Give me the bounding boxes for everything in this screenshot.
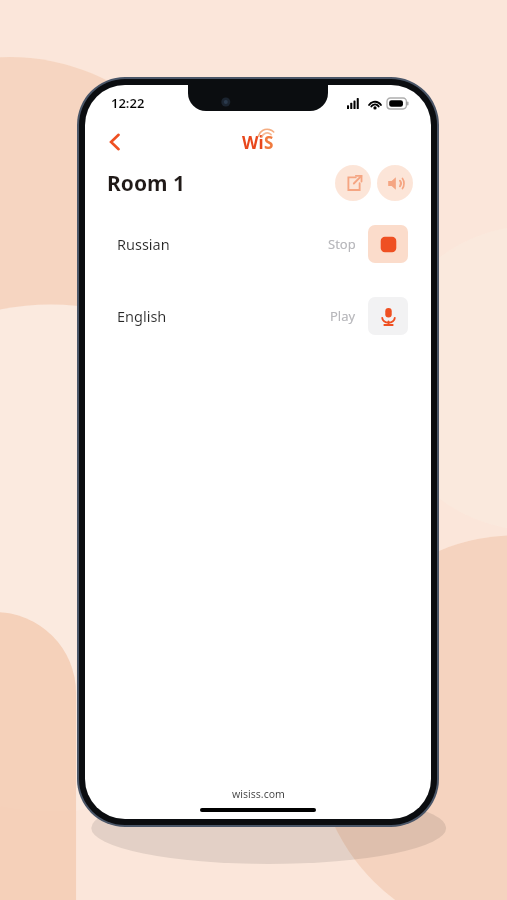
staticText: Play xyxy=(330,307,356,325)
button[interactable]: Back xyxy=(95,122,135,162)
staticText: Room 1 xyxy=(107,169,185,198)
staticText: 12:22 xyxy=(111,94,145,112)
staticText: Stop xyxy=(328,235,356,253)
button[interactable]: Volume xyxy=(377,165,413,201)
button[interactable]: English xyxy=(100,287,416,344)
staticText: wisiss.com xyxy=(232,787,285,801)
button[interactable]: Russian xyxy=(100,215,416,272)
staticText: S xyxy=(264,131,274,153)
staticText: Russian xyxy=(117,234,170,254)
staticText: Wi xyxy=(242,131,264,153)
button[interactable]: Stop xyxy=(368,225,408,263)
staticText: English xyxy=(117,306,167,326)
button[interactable]: Play xyxy=(368,297,408,335)
button[interactable]: Share xyxy=(335,165,371,201)
